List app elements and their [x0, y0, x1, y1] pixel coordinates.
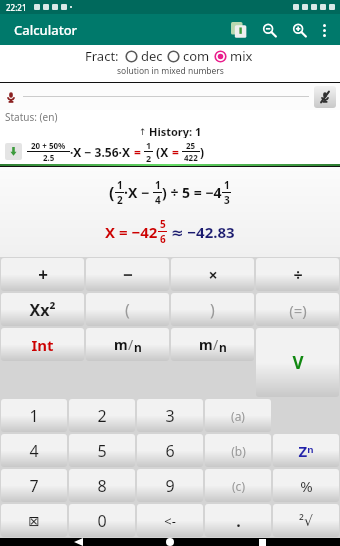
staticText: 5	[160, 217, 166, 231]
staticText: 2	[97, 405, 107, 427]
staticText: Status: (en)	[5, 110, 58, 124]
button[interactable]: dec	[123, 47, 165, 65]
staticText: n	[134, 339, 142, 355]
button[interactable]: −	[86, 258, 169, 291]
staticText: 6	[160, 232, 166, 246]
button[interactable]: (b)	[205, 434, 271, 467]
staticText: solution in mixed numbers	[117, 65, 224, 77]
button[interactable]: +	[1, 258, 84, 291]
button[interactable]: mix	[212, 47, 255, 65]
staticText: com	[183, 47, 210, 65]
button[interactable]: 4	[1, 434, 67, 467]
button[interactable]: 5	[69, 434, 135, 467]
staticText: n	[219, 339, 227, 355]
staticText: Xx²	[29, 299, 56, 321]
button[interactable]: Zoom in	[284, 15, 314, 45]
staticText: m	[199, 335, 213, 354]
button[interactable]: ↑	[139, 124, 202, 138]
button[interactable]: Back	[64, 538, 92, 546]
staticText: ⊠	[28, 513, 40, 529]
button[interactable]: Recents	[248, 538, 276, 546]
button[interactable]: %	[273, 469, 339, 502]
button[interactable]: Home	[156, 538, 184, 546]
staticText: 3	[165, 405, 175, 427]
staticText: X = −42	[105, 222, 158, 242]
staticText: ) ÷ 5 = −4	[162, 183, 222, 202]
staticText: ↑	[139, 125, 149, 137]
button[interactable]: 20 + 50%	[0, 138, 340, 164]
button[interactable]: <-	[137, 504, 203, 537]
button[interactable]: )	[171, 293, 254, 326]
staticText: )	[210, 299, 215, 321]
staticText: Fract:	[85, 47, 119, 65]
button[interactable]: (c)	[205, 469, 271, 502]
staticText: 5	[97, 440, 107, 462]
button[interactable]: m	[171, 328, 254, 361]
button[interactable]: m	[86, 328, 169, 361]
button[interactable]: 3	[137, 399, 203, 432]
staticText: 22:21	[6, 2, 27, 13]
button[interactable]: (=)	[256, 293, 339, 326]
button[interactable]: Zoom out	[254, 15, 284, 45]
staticText: ·X −	[124, 183, 153, 202]
staticText: Calculator	[14, 21, 78, 39]
staticText: ·X − 3.56·X	[70, 144, 134, 160]
button[interactable]: ⊠	[1, 504, 67, 537]
staticText: Int	[31, 335, 54, 355]
button[interactable]: Copy	[224, 15, 254, 45]
button[interactable]: .	[205, 504, 271, 537]
staticText: =	[134, 144, 144, 160]
staticText: (=)	[289, 300, 307, 320]
button[interactable]: Xx²	[1, 293, 84, 326]
staticText: (c)	[232, 478, 245, 494]
button[interactable]: 0	[69, 504, 135, 537]
button[interactable]: (a)	[205, 399, 271, 432]
staticText: <-	[164, 512, 176, 530]
staticText: ≈ −42.83	[167, 222, 235, 242]
button[interactable]: ×	[171, 258, 254, 291]
staticText: 1	[155, 178, 161, 192]
staticText: ÷	[293, 264, 303, 286]
staticText: 20 + 50%	[31, 140, 66, 151]
staticText: 422	[184, 152, 198, 163]
staticText: (b)	[231, 443, 246, 459]
staticText: ×	[208, 264, 218, 286]
staticText: V	[292, 351, 304, 374]
staticText: =	[172, 144, 182, 160]
button[interactable]: 8	[69, 469, 135, 502]
button[interactable]: 2	[69, 399, 135, 432]
button[interactable]: (	[86, 293, 169, 326]
staticText: (X	[153, 144, 172, 160]
staticText: m	[114, 335, 128, 354]
button[interactable]: 6	[137, 434, 203, 467]
staticText: −	[123, 263, 133, 286]
staticText: 2.5	[43, 152, 55, 163]
button[interactable]: com	[165, 47, 212, 65]
staticText: 0	[97, 510, 107, 532]
staticText: +	[38, 263, 48, 286]
button[interactable]: Zⁿ	[273, 434, 339, 467]
staticText: ²√	[299, 511, 313, 530]
staticText: 7	[29, 475, 39, 497]
staticText: (	[109, 182, 115, 204]
button[interactable]: 9	[137, 469, 203, 502]
button[interactable]: More options	[314, 15, 334, 45]
staticText: /	[128, 335, 134, 354]
button[interactable]: ÷	[256, 258, 339, 291]
button[interactable]: 1	[1, 399, 67, 432]
staticText: 1	[117, 178, 123, 192]
button[interactable]: Mute microphone	[314, 86, 336, 108]
button[interactable]: V	[256, 328, 339, 397]
button[interactable]: Int	[1, 328, 84, 361]
staticText: 2	[117, 193, 123, 207]
staticText: History: 1	[149, 124, 202, 138]
staticText: .	[236, 510, 241, 532]
staticText: /	[213, 335, 219, 354]
staticText: 4	[29, 440, 39, 462]
staticText: 1	[29, 405, 39, 427]
staticText: 2	[146, 152, 152, 164]
staticText: (a)	[231, 408, 245, 424]
staticText: 1	[224, 178, 230, 192]
button[interactable]: ²√	[273, 504, 339, 537]
button[interactable]: 7	[1, 469, 67, 502]
